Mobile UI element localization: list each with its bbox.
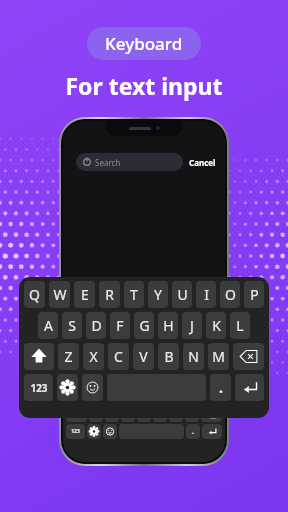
button[interactable]: . bbox=[210, 374, 231, 401]
button[interactable]: K bbox=[206, 312, 226, 339]
button[interactable]: V bbox=[133, 343, 154, 370]
button[interactable]: A bbox=[74, 390, 87, 405]
button[interactable]: X bbox=[105, 407, 119, 422]
staticText: M bbox=[212, 347, 225, 366]
staticText: For text input bbox=[0, 70, 288, 101]
button[interactable]: D bbox=[104, 390, 117, 405]
staticText: D bbox=[91, 316, 102, 335]
button[interactable]: Emoji bbox=[103, 424, 117, 439]
button[interactable]: N bbox=[169, 407, 183, 422]
button[interactable]: J bbox=[167, 390, 181, 405]
button[interactable]: H bbox=[158, 312, 178, 339]
button[interactable]: C bbox=[108, 343, 129, 370]
button[interactable]: P bbox=[208, 373, 222, 388]
button[interactable]: G bbox=[135, 390, 149, 405]
button[interactable]: S bbox=[89, 390, 102, 405]
button[interactable]: W bbox=[81, 373, 94, 388]
button[interactable]: L bbox=[230, 312, 250, 339]
button[interactable]: A bbox=[38, 312, 58, 339]
button[interactable]: J bbox=[182, 312, 202, 339]
button[interactable]: B bbox=[158, 343, 179, 370]
button[interactable]: P bbox=[244, 281, 264, 308]
staticText: U bbox=[177, 285, 188, 304]
staticText: B bbox=[164, 347, 174, 366]
button[interactable]: Shift bbox=[24, 343, 54, 370]
staticText: C bbox=[114, 347, 123, 366]
staticText: G bbox=[139, 316, 150, 335]
staticText: F bbox=[116, 316, 124, 335]
staticText: M bbox=[189, 410, 196, 420]
staticText: Z bbox=[94, 410, 99, 420]
button[interactable]: K bbox=[183, 390, 197, 405]
button[interactable]: U bbox=[160, 373, 174, 388]
button[interactable]: M bbox=[208, 343, 229, 370]
button[interactable]: Settings bbox=[57, 374, 78, 401]
button[interactable]: F bbox=[119, 390, 133, 405]
staticText: W bbox=[84, 376, 91, 386]
button[interactable]: R bbox=[112, 373, 126, 388]
staticText: Keyboard bbox=[105, 32, 183, 55]
button[interactable]: H bbox=[151, 390, 165, 405]
button[interactable]: N bbox=[183, 343, 204, 370]
button[interactable]: O bbox=[220, 281, 240, 308]
button[interactable]: I bbox=[176, 373, 190, 388]
button[interactable]: V bbox=[137, 407, 151, 422]
button[interactable]: T bbox=[124, 281, 144, 308]
button[interactable]: Cancel bbox=[189, 157, 216, 168]
button[interactable]: R bbox=[99, 281, 120, 308]
button[interactable]: W bbox=[49, 281, 70, 308]
staticText: A bbox=[44, 316, 53, 335]
button[interactable]: Enter bbox=[235, 374, 264, 401]
button[interactable]: 123 bbox=[24, 374, 53, 401]
button[interactable]: Z bbox=[58, 343, 79, 370]
staticText: D bbox=[108, 393, 114, 403]
button[interactable]: S bbox=[62, 312, 82, 339]
button[interactable]: B bbox=[153, 407, 167, 422]
button[interactable]: 123 bbox=[66, 424, 85, 439]
button[interactable]: E bbox=[74, 281, 95, 308]
button[interactable]: Q bbox=[24, 281, 45, 308]
staticText: W bbox=[53, 285, 67, 304]
staticText: V bbox=[139, 347, 148, 366]
button[interactable]: Settings bbox=[87, 424, 101, 439]
button[interactable]: Y bbox=[144, 373, 158, 388]
button[interactable]: Shift bbox=[66, 407, 87, 422]
button[interactable]: Q bbox=[66, 373, 79, 388]
button[interactable]: D bbox=[86, 312, 106, 339]
staticText: G bbox=[139, 393, 145, 403]
button[interactable]: E bbox=[96, 373, 110, 388]
button[interactable]: Keyboard bbox=[87, 27, 201, 60]
button[interactable]: F bbox=[110, 312, 130, 339]
button[interactable]: G bbox=[134, 312, 154, 339]
staticText: . bbox=[219, 378, 223, 397]
button[interactable]: Search bbox=[76, 153, 183, 171]
staticText: X bbox=[110, 410, 115, 420]
button[interactable]: Enter bbox=[202, 424, 222, 439]
staticText: Cancel bbox=[189, 157, 216, 168]
staticText: X bbox=[89, 347, 98, 366]
button[interactable]: M bbox=[185, 407, 199, 422]
button[interactable]: U bbox=[172, 281, 192, 308]
staticText: . bbox=[192, 427, 194, 437]
staticText: K bbox=[188, 393, 193, 403]
button[interactable]: O bbox=[192, 373, 206, 388]
button[interactable]: C bbox=[121, 407, 135, 422]
button[interactable]: L bbox=[199, 390, 213, 405]
button[interactable]: Z bbox=[89, 407, 103, 422]
staticText: B bbox=[158, 410, 163, 420]
button[interactable]: I bbox=[196, 281, 216, 308]
button[interactable]: Backspace bbox=[233, 343, 264, 370]
staticText: Y bbox=[154, 285, 162, 304]
button[interactable]: . bbox=[186, 424, 200, 439]
button[interactable]: Backspace bbox=[201, 407, 222, 422]
button[interactable]: X bbox=[83, 343, 104, 370]
button[interactable]: Y bbox=[148, 281, 168, 308]
button[interactable]: T bbox=[128, 373, 142, 388]
staticText: A bbox=[78, 393, 83, 403]
button[interactable]: Emoji bbox=[82, 374, 103, 401]
staticText: V bbox=[142, 410, 147, 420]
